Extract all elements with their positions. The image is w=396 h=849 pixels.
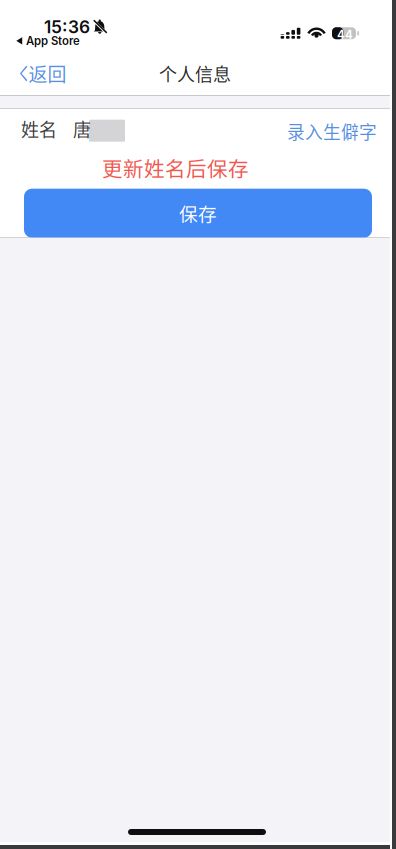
button[interactable]: 返回 [0, 54, 76, 93]
staticText: 44 [337, 28, 353, 41]
staticText: 录入生僻字 [287, 118, 377, 144]
staticText: 个人信息 [159, 60, 231, 87]
staticText: 姓名 [21, 116, 57, 142]
staticText: App Store [26, 34, 80, 48]
staticText: 保存 [179, 200, 217, 227]
button[interactable]: 录入生僻字 [287, 106, 390, 151]
staticText: 唐 [73, 116, 91, 142]
staticText: 返回 [28, 60, 66, 87]
button[interactable]: 保存 [0, 189, 390, 238]
staticText: 更新姓名后保存 [102, 153, 249, 182]
staticText: 15:36 [44, 16, 90, 37]
